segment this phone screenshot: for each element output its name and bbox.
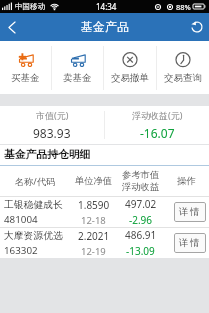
staticText: 浮动收益(元) (132, 109, 183, 121)
button[interactable]: 卖基金 (52, 41, 103, 94)
staticText: 中国移动 (15, 2, 45, 11)
staticText: 市值(元) (36, 109, 69, 121)
button[interactable]: Back (0, 13, 24, 41)
button[interactable]: 详情 (174, 233, 206, 253)
staticText: 名称/代码 (0, 175, 70, 188)
button[interactable]: Refresh (185, 13, 209, 41)
staticText: 工银稳健成长 (4, 199, 63, 211)
staticText: -2.96 (129, 213, 153, 227)
staticText: 基金产品持仓明细 (4, 148, 91, 162)
button[interactable]: 买基金 (0, 41, 51, 94)
staticText: 163302 (4, 244, 38, 257)
staticText: 参考市值 (122, 169, 160, 181)
button[interactable]: 工银稳健成长 (0, 197, 209, 227)
button[interactable]: 交易撤单 (104, 41, 156, 94)
staticText: 交易撤单 (111, 72, 149, 84)
staticText: -13.09 (126, 244, 155, 258)
staticText: 卖基金 (63, 72, 92, 84)
staticText: 1.8590 (78, 198, 110, 212)
staticText: 单位净值 (70, 175, 117, 187)
staticText: 497.02 (125, 197, 157, 211)
staticText: 浮动收益 (122, 181, 160, 193)
staticText: 详情 (179, 237, 202, 249)
staticText: 买基金 (11, 72, 40, 84)
staticText: 14:34 (96, 1, 117, 12)
staticText: 基金产品 (81, 19, 129, 34)
staticText: 481004 (4, 213, 38, 226)
staticText: -16.07 (140, 125, 175, 141)
button[interactable]: 大摩资源优选 (0, 228, 209, 258)
staticText: 操作 (164, 175, 209, 187)
staticText: 12-19 (81, 245, 106, 258)
staticText: 983.93 (33, 125, 71, 141)
button[interactable]: 详情 (174, 202, 206, 222)
staticText: 大摩资源优选 (4, 230, 63, 242)
staticText: 88% (176, 2, 191, 12)
staticText: 交易查询 (164, 72, 202, 84)
staticText: 486.91 (125, 228, 157, 242)
staticText: 12-18 (81, 214, 106, 227)
button[interactable]: 交易查询 (157, 41, 209, 94)
staticText: 详情 (179, 206, 202, 218)
staticText: 2.2021 (78, 229, 110, 243)
